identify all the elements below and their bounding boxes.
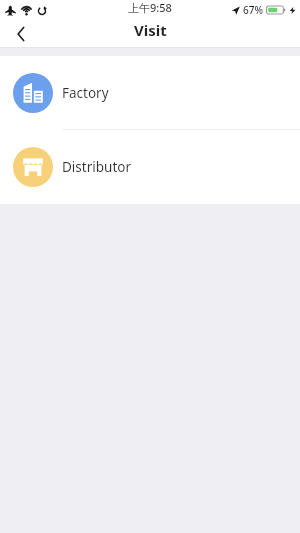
staticText: 67%	[243, 3, 263, 17]
staticText: Distributor	[62, 158, 131, 176]
staticText: Visit	[134, 20, 167, 40]
staticText: 上午9:58	[128, 0, 172, 15]
button[interactable]: Distributor	[0, 130, 300, 204]
button[interactable]: Back	[0, 20, 42, 48]
staticText: Factory	[62, 84, 109, 102]
button[interactable]: Factory	[0, 56, 300, 130]
